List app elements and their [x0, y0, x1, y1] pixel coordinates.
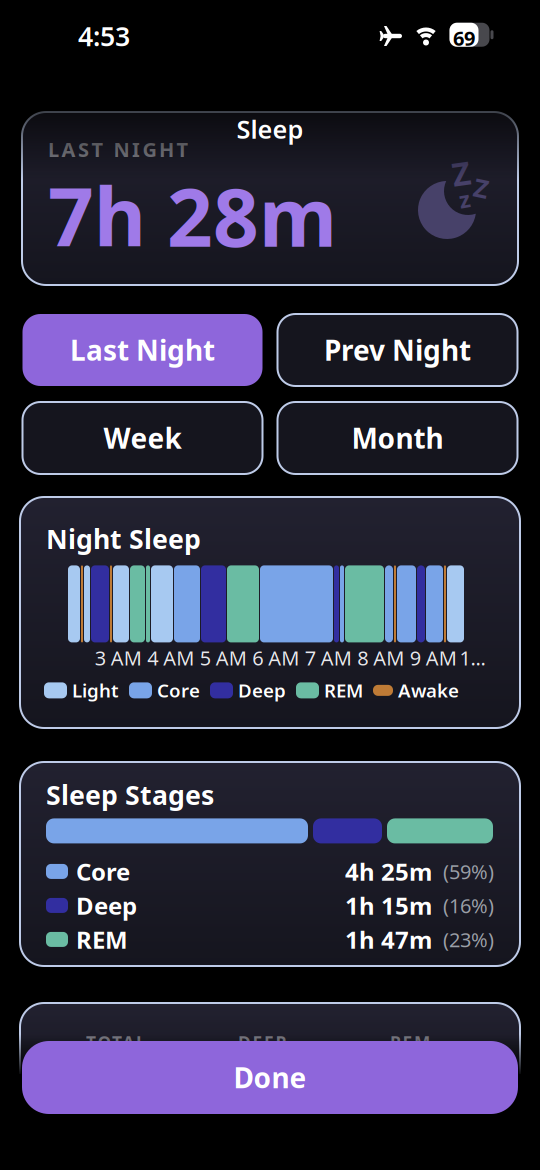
staticText: Core: [157, 678, 200, 703]
staticText: Sleep: [236, 112, 303, 146]
staticText: TOTAL: [86, 1031, 146, 1054]
staticText: 1h 47m: [345, 923, 432, 955]
staticText: Month: [351, 419, 443, 457]
staticText: (59%): [443, 858, 494, 885]
staticText: Core: [76, 855, 130, 887]
staticText: (23%): [443, 926, 494, 953]
staticText: 69: [453, 25, 475, 51]
staticText: Light: [72, 678, 119, 703]
staticText: Last Night: [70, 331, 215, 369]
staticText: Week: [103, 419, 181, 457]
staticText: REM: [76, 923, 128, 955]
button[interactable]: Last Night: [22, 314, 262, 386]
staticText: 9 AM: [410, 644, 457, 671]
staticText: REM: [390, 1031, 430, 1054]
staticText: Z: [452, 152, 471, 194]
staticText: Night Sleep: [46, 521, 201, 556]
staticText: Awake: [398, 678, 459, 703]
staticText: 1...: [459, 644, 485, 671]
staticText: 8 AM: [357, 644, 404, 671]
staticText: 6 AM: [252, 644, 299, 671]
staticText: REM: [324, 678, 363, 703]
button[interactable]: Prev Night: [277, 314, 517, 386]
staticText: 4 AM: [147, 644, 194, 671]
staticText: Prev Night: [324, 331, 471, 369]
staticText: (16%): [443, 892, 494, 919]
staticText: 1h 15m: [345, 889, 432, 921]
button[interactable]: Month: [277, 402, 517, 474]
button[interactable]: Done: [22, 1041, 518, 1114]
staticText: Deep: [238, 678, 286, 703]
staticText: LAST NIGHT: [48, 136, 188, 163]
staticText: DEEP: [238, 1031, 286, 1054]
staticText: 5 AM: [200, 644, 247, 671]
staticText: 7h 28m: [48, 163, 337, 269]
staticText: z: [459, 184, 470, 214]
staticText: 4h 25m: [345, 855, 432, 887]
staticText: Z: [474, 171, 489, 205]
button[interactable]: Week: [22, 402, 262, 474]
staticText: 7 AM: [305, 644, 352, 671]
staticText: Deep: [76, 889, 137, 921]
staticText: Done: [233, 1059, 306, 1096]
staticText: Sleep Stages: [46, 777, 214, 812]
staticText: 4:53: [78, 18, 130, 54]
staticText: 3 AM: [95, 644, 142, 671]
